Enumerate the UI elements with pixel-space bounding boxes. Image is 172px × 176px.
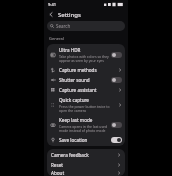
staticText: General (49, 36, 64, 41)
button[interactable]: Back (47, 10, 56, 19)
button[interactable]: Toggle off (111, 52, 122, 58)
other: Open (118, 68, 122, 72)
staticText: Camera feedback (51, 152, 117, 158)
button[interactable]: About (47, 170, 125, 175)
staticText: Ultra HDR (59, 47, 81, 53)
staticText: Save location (59, 137, 88, 143)
button[interactable]: Ultra HDR (47, 45, 125, 65)
other: Open (118, 88, 122, 92)
other: Open (117, 171, 121, 175)
button[interactable]: Camera feedback (47, 150, 125, 160)
button[interactable]: Toggle on (111, 137, 122, 143)
staticText: Reset (51, 162, 117, 168)
staticText: About (51, 170, 117, 175)
button[interactable]: Toggle off (111, 77, 122, 83)
staticText: Camera opens in the last used mode inste… (59, 124, 109, 133)
button[interactable]: Keep last mode (47, 115, 125, 135)
staticText: Shutter sound (59, 77, 90, 83)
button[interactable]: Toggle off (111, 122, 122, 128)
staticText: Capture assistant (59, 87, 97, 93)
button[interactable]: Reset (47, 160, 125, 170)
staticText: 9:41 (48, 2, 56, 7)
button[interactable]: Quick capture (47, 95, 125, 115)
staticText: Capture methods (59, 67, 97, 73)
button[interactable]: Shutter sound (47, 75, 125, 85)
staticText: Take photos with colors so they appear a… (59, 54, 109, 63)
staticText: Quick capture (59, 97, 89, 103)
other: Open (117, 163, 121, 167)
button[interactable]: Capture methods (47, 65, 125, 75)
other: Search (50, 24, 54, 28)
staticText: Settings (58, 11, 81, 19)
other: Open (117, 153, 121, 157)
button[interactable]: Search (47, 21, 125, 31)
staticText: Press the power button twice to open the… (59, 104, 116, 113)
button[interactable]: Save location (47, 135, 125, 145)
other: Open (118, 103, 122, 107)
staticText: Keep last mode (59, 117, 93, 123)
button[interactable]: Capture assistant (47, 85, 125, 95)
staticText: Search (56, 23, 71, 29)
